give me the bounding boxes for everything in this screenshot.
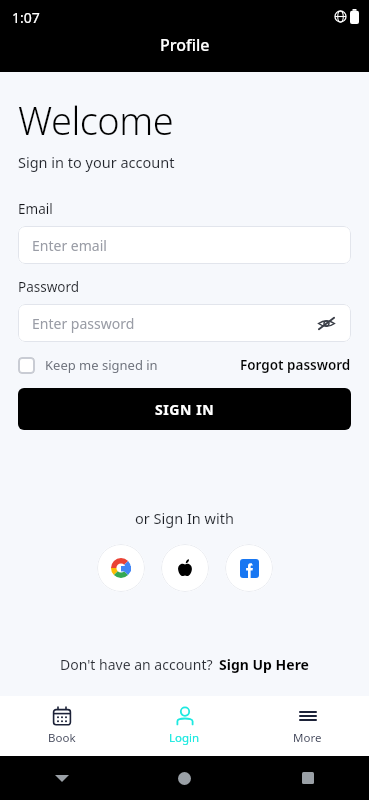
staticText: Keep me signed in (45, 356, 158, 374)
button[interactable]: Keep me signed in (18, 356, 158, 374)
button[interactable]: More (246, 696, 369, 756)
staticText: Enter password (32, 314, 135, 333)
button[interactable]: Book (0, 696, 123, 756)
staticText: SIGN IN (155, 400, 215, 419)
staticText: Profile (160, 34, 210, 56)
staticText: 1:07 (12, 8, 40, 27)
button[interactable]: Show password (315, 312, 337, 334)
staticText: Welcome (18, 94, 174, 146)
staticText: or Sign In with (135, 508, 234, 528)
staticText: Login (169, 730, 200, 746)
button[interactable]: Sign in with Apple (161, 544, 209, 592)
staticText: Enter email (32, 236, 107, 255)
button[interactable]: Forgot password (240, 356, 351, 374)
button[interactable]: Enter email (18, 226, 351, 264)
button[interactable]: Home (123, 756, 246, 800)
button[interactable]: Sign in with Google (97, 544, 145, 592)
button[interactable]: Sign in with Facebook (225, 544, 273, 592)
button[interactable]: Login (123, 696, 246, 756)
button[interactable]: Back (0, 756, 123, 800)
staticText: Sign in to your account (18, 152, 175, 172)
staticText: Don't have an account? (60, 655, 213, 674)
staticText: Book (48, 730, 76, 746)
button[interactable]: SIGN IN (18, 388, 351, 430)
button[interactable]: Don't have an account? (0, 655, 369, 696)
staticText: Sign Up Here (219, 655, 309, 674)
staticText: More (293, 730, 322, 746)
staticText: Email (18, 200, 53, 218)
button[interactable]: Enter password (18, 304, 351, 342)
button[interactable]: Recents (246, 756, 369, 800)
staticText: Forgot password (240, 356, 351, 374)
staticText: Password (18, 278, 80, 296)
